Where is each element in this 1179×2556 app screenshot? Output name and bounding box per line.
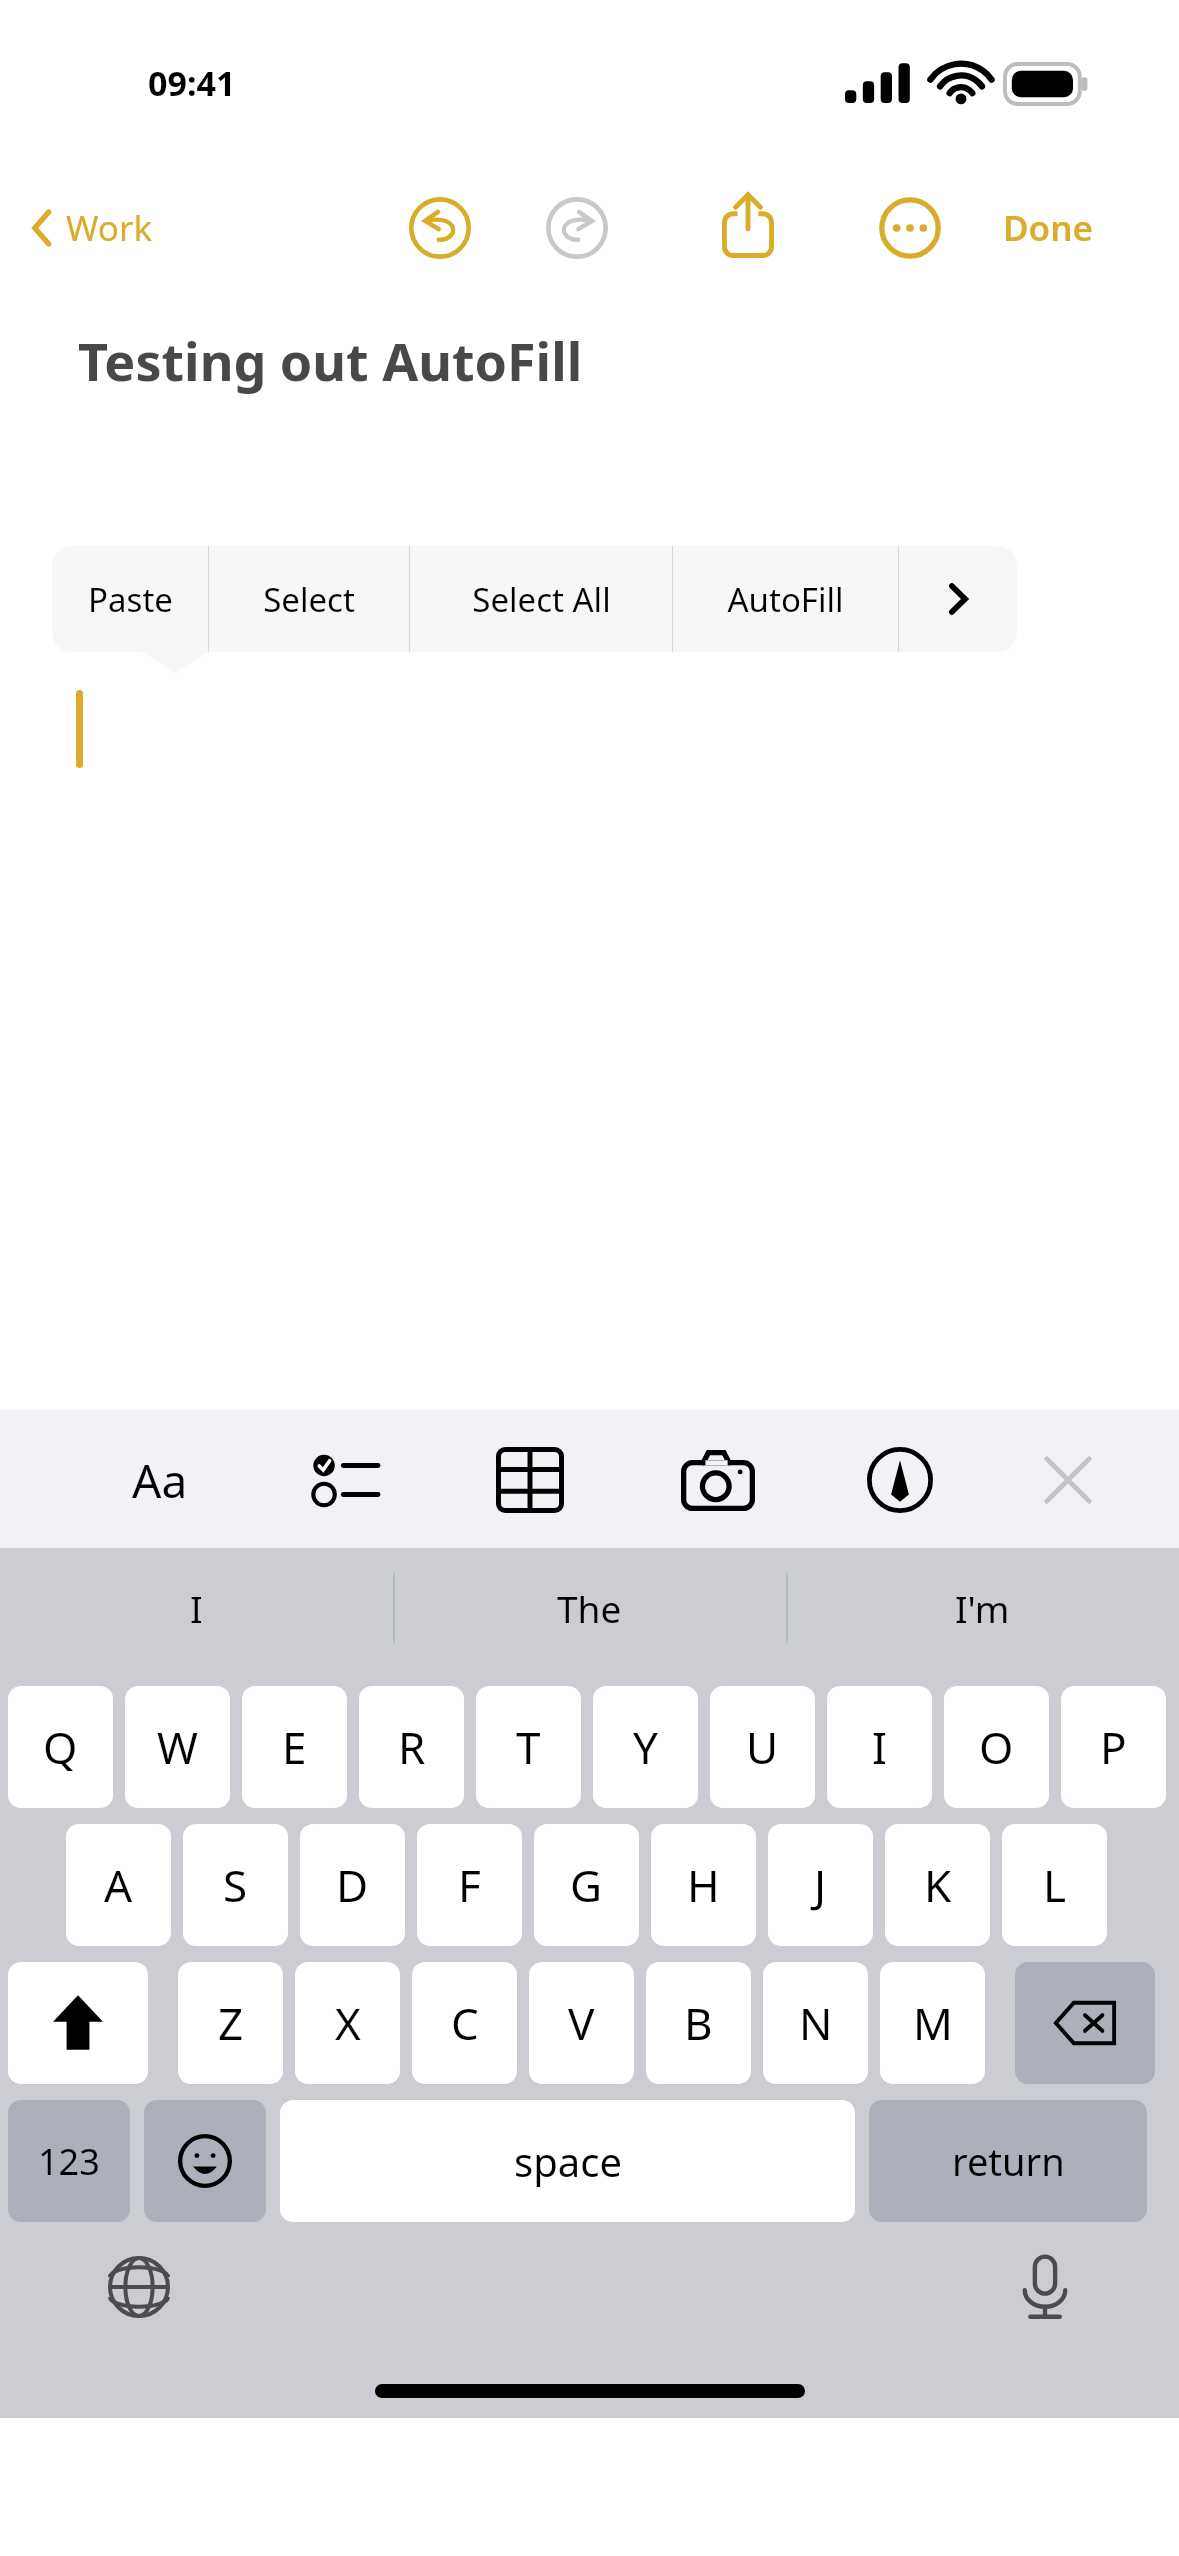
- button[interactable]: Undo: [398, 186, 482, 270]
- button[interactable]: K: [885, 1824, 990, 1946]
- button[interactable]: space: [280, 2100, 855, 2222]
- staticText: T: [516, 1717, 541, 1777]
- button[interactable]: B: [646, 1962, 751, 2084]
- button[interactable]: S: [183, 1824, 288, 1946]
- staticText: A: [104, 1855, 133, 1915]
- button[interactable]: Checklist: [297, 1432, 393, 1528]
- button[interactable]: Work: [18, 185, 165, 271]
- staticText: Testing out AutoFill: [78, 325, 583, 396]
- staticText: G: [570, 1855, 603, 1915]
- button[interactable]: C: [412, 1962, 517, 2084]
- staticText: V: [568, 1993, 595, 2053]
- button[interactable]: AutoFill: [673, 546, 898, 652]
- staticText: F: [458, 1855, 481, 1915]
- button[interactable]: V: [529, 1962, 634, 2084]
- staticText: M: [913, 1993, 953, 2053]
- button[interactable]: N: [763, 1962, 868, 2084]
- button[interactable]: P: [1061, 1686, 1166, 1808]
- staticText: U: [746, 1717, 779, 1777]
- staticText: W: [157, 1717, 198, 1777]
- staticText: Z: [218, 1993, 244, 2053]
- button[interactable]: Table: [482, 1432, 578, 1528]
- staticText: space: [514, 2134, 622, 2188]
- button[interactable]: U: [710, 1686, 815, 1808]
- staticText: 09:41: [148, 60, 236, 106]
- button[interactable]: A: [66, 1824, 171, 1946]
- button[interactable]: Y: [593, 1686, 698, 1808]
- button[interactable]: Format: [112, 1432, 208, 1528]
- button[interactable]: Emoji: [144, 2100, 266, 2222]
- staticText: I: [190, 1583, 203, 1633]
- staticText: H: [687, 1855, 720, 1915]
- staticText: Select All: [472, 577, 611, 622]
- button[interactable]: Redo: [535, 186, 619, 270]
- button[interactable]: The: [393, 1548, 786, 1668]
- staticText: K: [924, 1855, 952, 1915]
- button[interactable]: T: [476, 1686, 581, 1808]
- button[interactable]: I: [0, 1548, 393, 1668]
- staticText: Work: [66, 204, 153, 252]
- button[interactable]: H: [651, 1824, 756, 1946]
- staticText: N: [799, 1993, 833, 2053]
- button[interactable]: I: [827, 1686, 932, 1808]
- button[interactable]: G: [534, 1824, 639, 1946]
- button[interactable]: Q: [8, 1686, 113, 1808]
- staticText: The: [557, 1583, 622, 1633]
- button[interactable]: Switch keyboard: [96, 2244, 182, 2330]
- staticText: 123: [38, 2137, 100, 2186]
- button[interactable]: O: [944, 1686, 1049, 1808]
- button[interactable]: More: [868, 186, 952, 270]
- button[interactable]: Select All: [410, 546, 672, 652]
- staticText: Y: [633, 1717, 658, 1777]
- staticText: Q: [43, 1717, 78, 1777]
- button[interactable]: F: [417, 1824, 522, 1946]
- staticText: I: [872, 1717, 887, 1777]
- staticText: S: [223, 1855, 248, 1915]
- staticText: L: [1043, 1855, 1067, 1915]
- button[interactable]: Shift: [8, 1962, 148, 2084]
- staticText: AutoFill: [727, 577, 844, 622]
- button[interactable]: I'm: [786, 1548, 1179, 1668]
- staticText: R: [398, 1717, 426, 1777]
- staticText: X: [335, 1993, 361, 2053]
- staticText: B: [684, 1993, 713, 2053]
- button[interactable]: E: [242, 1686, 347, 1808]
- staticText: O: [979, 1717, 1014, 1777]
- button[interactable]: W: [125, 1686, 230, 1808]
- button[interactable]: X: [295, 1962, 400, 2084]
- button[interactable]: Share: [703, 180, 793, 270]
- button[interactable]: Z: [178, 1962, 283, 2084]
- button[interactable]: R: [359, 1686, 464, 1808]
- button[interactable]: Select: [209, 546, 409, 652]
- staticText: D: [336, 1855, 369, 1915]
- staticText: Paste: [88, 577, 173, 622]
- button[interactable]: Paste: [52, 546, 208, 652]
- button[interactable]: return: [869, 2100, 1147, 2222]
- button[interactable]: Close keyboard: [1020, 1432, 1116, 1528]
- button[interactable]: L: [1002, 1824, 1107, 1946]
- button[interactable]: J: [768, 1824, 873, 1946]
- staticText: return: [952, 2135, 1065, 2187]
- button[interactable]: Camera: [670, 1432, 766, 1528]
- button[interactable]: Backspace: [1015, 1962, 1155, 2084]
- staticText: J: [814, 1855, 827, 1915]
- staticText: C: [451, 1993, 479, 2053]
- button[interactable]: Dictate: [1002, 2244, 1088, 2330]
- staticText: Aa: [132, 1449, 188, 1512]
- button[interactable]: 123: [8, 2100, 130, 2222]
- button[interactable]: Markup: [852, 1432, 948, 1528]
- staticText: P: [1100, 1717, 1127, 1777]
- button[interactable]: D: [300, 1824, 405, 1946]
- staticText: I'm: [955, 1583, 1010, 1633]
- staticText: Done: [1003, 204, 1094, 252]
- button[interactable]: Done: [995, 186, 1102, 270]
- staticText: E: [282, 1717, 307, 1777]
- staticText: Select: [263, 577, 355, 622]
- button[interactable]: M: [880, 1962, 985, 2084]
- button[interactable]: More options: [899, 546, 1017, 652]
